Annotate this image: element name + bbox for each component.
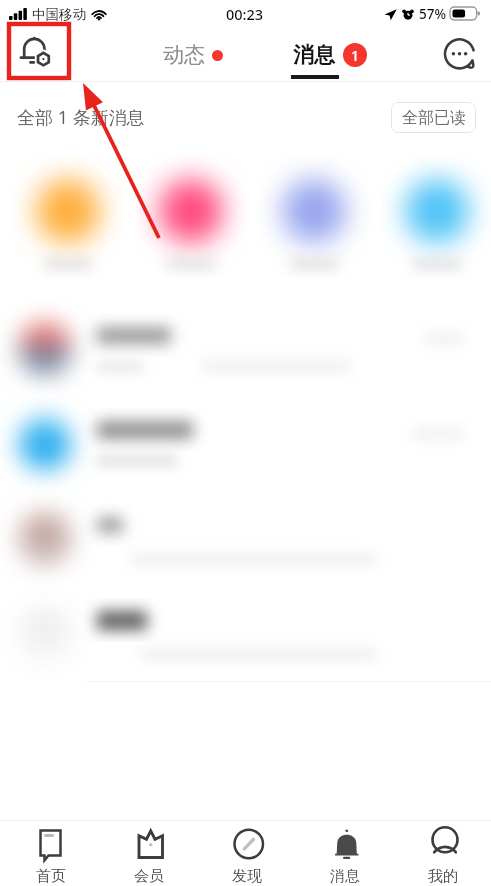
staticText: 会员 [134,867,164,886]
button[interactable] [129,152,252,301]
staticText: 00:23 [226,4,264,24]
button[interactable]: 会员 [99,821,197,886]
button[interactable]: 消息 [295,821,393,886]
button[interactable]: 动态 [163,28,223,81]
button[interactable] [252,152,375,301]
staticText: 我的 [428,867,458,886]
button[interactable]: Notification settings [12,29,58,75]
button[interactable]: 消息 [293,28,367,81]
staticText: 1 [351,46,360,65]
button[interactable] [0,586,491,681]
staticText: 消息 [293,42,335,68]
staticText: 57% [419,5,446,23]
button[interactable]: 我的 [393,821,491,886]
button[interactable] [375,152,491,301]
button[interactable] [0,491,491,586]
staticText: 全部已读 [402,108,466,128]
staticText: 首页 [36,867,66,886]
button[interactable]: More [435,31,483,79]
staticText: 中国移动 [32,6,86,23]
staticText: 全部 1 条新消息 [17,105,145,130]
staticText: 消息 [330,867,360,886]
button[interactable] [7,152,129,301]
button[interactable] [0,301,491,396]
staticText: 发现 [232,867,262,886]
button[interactable] [0,396,491,491]
staticText: 动态 [163,42,205,68]
button[interactable]: 发现 [197,821,295,886]
button[interactable]: 全部已读 [391,102,476,133]
button[interactable]: 首页 [0,821,99,886]
